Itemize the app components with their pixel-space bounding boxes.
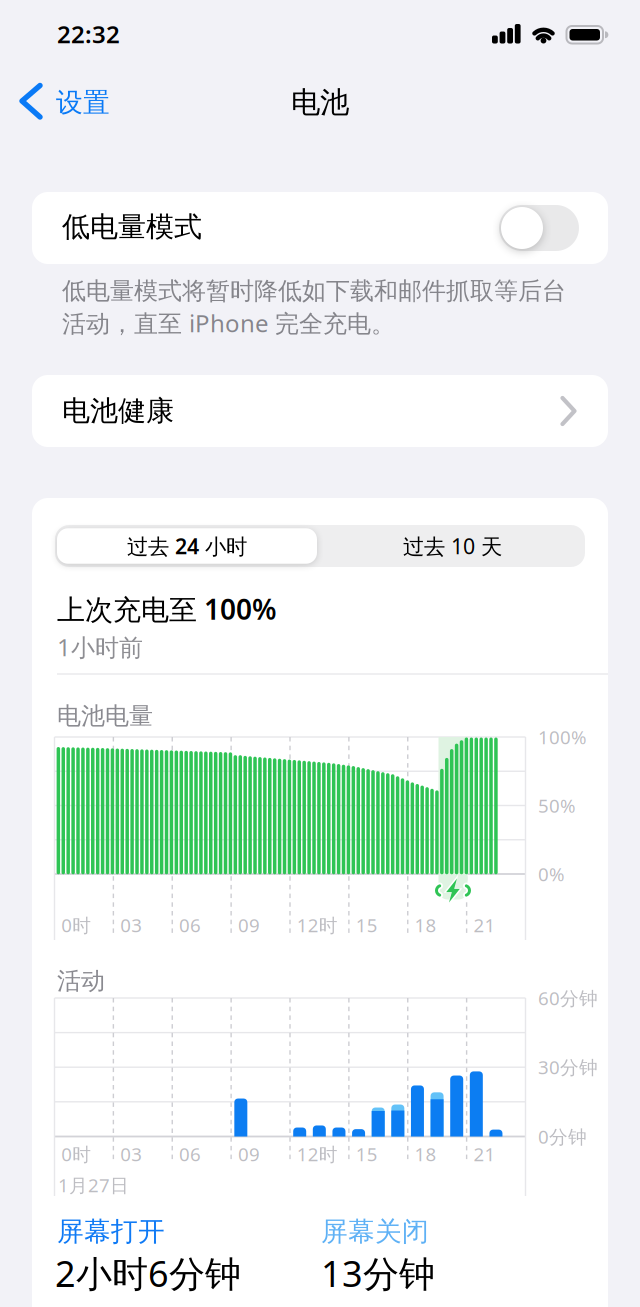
staticText: 21 xyxy=(473,1142,495,1166)
staticText: 15 xyxy=(356,1142,378,1166)
button[interactable]: 返回设置 xyxy=(14,79,122,125)
staticText: 13分钟 xyxy=(321,1249,435,1297)
staticText: 15 xyxy=(356,913,378,937)
button[interactable]: 电池健康 xyxy=(32,375,608,447)
staticText: 06 xyxy=(179,913,201,937)
staticText: 60分钟 xyxy=(538,986,598,1010)
staticText: 06 xyxy=(179,1142,201,1166)
button[interactable]: 过去 10 天 xyxy=(320,525,584,567)
staticText: 09 xyxy=(238,913,260,937)
staticText: 12时 xyxy=(297,913,338,937)
staticText: 03 xyxy=(120,913,142,937)
staticText: 50% xyxy=(538,793,576,818)
staticText: 0时 xyxy=(61,1142,91,1166)
staticText: 屏幕打开 xyxy=(57,1215,165,1248)
button[interactable]: 低电量模式 xyxy=(499,205,579,251)
staticText: 屏幕关闭 xyxy=(321,1215,429,1248)
staticText: 30分钟 xyxy=(538,1055,598,1079)
staticText: 低电量模式将暂时降低如下载和邮件抓取等后台 xyxy=(62,276,566,306)
staticText: 电池 xyxy=(291,84,349,120)
staticText: 22:32 xyxy=(57,18,120,50)
staticText: 09 xyxy=(238,1142,260,1166)
staticText: 21 xyxy=(473,913,495,937)
staticText: 活动 xyxy=(57,966,105,996)
staticText: 03 xyxy=(120,1142,142,1166)
staticText: 上次充电至 100% xyxy=(57,590,277,628)
staticText: 100% xyxy=(538,725,587,749)
button[interactable]: 过去 24 小时 xyxy=(55,525,319,567)
staticText: 0分钟 xyxy=(538,1124,587,1149)
staticText: 低电量模式 xyxy=(62,210,202,244)
staticText: 1月27日 xyxy=(58,1173,129,1197)
staticText: 18 xyxy=(415,1142,437,1166)
staticText: 1小时前 xyxy=(57,631,143,663)
staticText: 2小时6分钟 xyxy=(55,1249,241,1297)
staticText: 0时 xyxy=(61,913,91,937)
staticText: 设置 xyxy=(56,86,110,119)
staticText: 18 xyxy=(415,913,437,937)
staticText: 活动，直至 iPhone 完全充电。 xyxy=(62,307,395,339)
staticText: 过去 10 天 xyxy=(403,532,502,560)
staticText: 电池健康 xyxy=(62,394,174,428)
staticText: 12时 xyxy=(297,1142,338,1166)
staticText: 电池电量 xyxy=(57,701,153,731)
staticText: 过去 24 小时 xyxy=(127,532,247,560)
staticText: 0% xyxy=(538,862,565,886)
